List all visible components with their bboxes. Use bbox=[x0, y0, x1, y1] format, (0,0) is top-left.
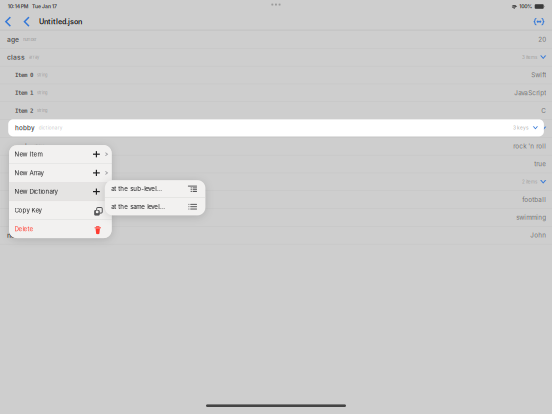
staticText: Swift bbox=[531, 71, 546, 79]
staticText: Item 2 bbox=[15, 107, 33, 114]
staticText: music bbox=[15, 143, 30, 150]
staticText: number bbox=[23, 37, 37, 42]
staticText: Delete bbox=[15, 225, 34, 233]
button[interactable]: New Array bbox=[9, 164, 112, 182]
staticText: New Dictionary bbox=[15, 188, 58, 195]
staticText: 3 items bbox=[522, 54, 537, 60]
staticText: Item 0 bbox=[15, 72, 33, 78]
staticText: Item 1 bbox=[15, 89, 33, 96]
staticText: string bbox=[45, 197, 55, 202]
button[interactable]: Previous file bbox=[22, 14, 32, 29]
staticText: bool bbox=[34, 162, 41, 166]
staticText: JavaScript bbox=[514, 89, 546, 97]
staticText: array bbox=[37, 179, 47, 184]
staticText: 100% bbox=[519, 3, 532, 9]
staticText: smoke bbox=[15, 161, 30, 167]
staticText: New Array bbox=[15, 169, 44, 177]
staticText: 10:14 PM bbox=[8, 3, 29, 9]
staticText: class bbox=[7, 53, 25, 61]
button[interactable]: Multitasking controls bbox=[271, 4, 280, 5]
staticText: at the same level... bbox=[111, 203, 165, 210]
staticText: name bbox=[7, 231, 25, 239]
staticText: rock 'n roll bbox=[513, 142, 546, 150]
staticText: hobby bbox=[15, 124, 35, 132]
staticText: Tue Jan 17 bbox=[32, 3, 57, 9]
staticText: dictionary bbox=[34, 126, 51, 131]
staticText: 20 bbox=[538, 36, 546, 43]
button[interactable]: Copy Key bbox=[9, 201, 112, 219]
staticText: string bbox=[37, 108, 47, 113]
staticText: hobby bbox=[15, 125, 30, 132]
staticText: 2 items bbox=[522, 179, 537, 185]
staticText: true bbox=[534, 160, 546, 168]
staticText: football bbox=[522, 196, 546, 203]
staticText: string bbox=[34, 144, 44, 149]
staticText: string bbox=[45, 215, 55, 220]
staticText: string bbox=[37, 73, 47, 77]
button[interactable]: Delete bbox=[9, 220, 112, 238]
button[interactable]: New Dictionary bbox=[9, 182, 112, 201]
staticText: C bbox=[541, 107, 546, 114]
staticText: swimming bbox=[516, 214, 546, 221]
staticText: Untitled.json bbox=[39, 17, 82, 26]
staticText: sports bbox=[15, 178, 33, 185]
staticText: New Item bbox=[15, 150, 43, 158]
button[interactable]: New Item bbox=[9, 145, 112, 163]
staticText: 3 keys bbox=[523, 126, 537, 131]
staticText: dictionary bbox=[39, 125, 63, 131]
staticText: at the sub-level... bbox=[111, 185, 162, 192]
staticText: array bbox=[29, 55, 39, 60]
staticText: age bbox=[7, 35, 19, 43]
button[interactable]: Back bbox=[3, 14, 13, 29]
staticText: Item 1 bbox=[23, 214, 41, 221]
staticText: John bbox=[530, 231, 546, 239]
staticText: Copy Key bbox=[15, 207, 42, 214]
staticText: 3 keys bbox=[513, 125, 529, 131]
button[interactable]: Expand or collapse all bbox=[532, 14, 546, 29]
staticText: string bbox=[37, 90, 47, 95]
button[interactable]: at the sub-level... bbox=[105, 180, 205, 197]
button[interactable]: at the same level... bbox=[105, 198, 205, 215]
staticText: Item 0 bbox=[23, 196, 41, 203]
